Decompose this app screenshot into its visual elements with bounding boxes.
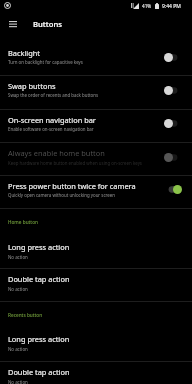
staticText: 9:44 PM xyxy=(162,3,181,10)
staticText: Always enable home button xyxy=(8,148,105,158)
button[interactable]: Switch off xyxy=(164,53,178,62)
staticText: Quickly open camera without unlocking yo… xyxy=(8,192,115,198)
staticText: On-screen navigation bar xyxy=(8,115,96,125)
button[interactable]: Switch off xyxy=(164,86,178,95)
button[interactable]: Switch off xyxy=(164,153,178,162)
staticText: Recents button xyxy=(8,312,43,318)
staticText: Keep hardware home button enabled when u… xyxy=(8,160,142,166)
button[interactable]: Open navigation menu xyxy=(0,16,26,34)
button[interactable] xyxy=(0,109,192,142)
button[interactable] xyxy=(0,38,192,74)
staticText: Swap the order of recents and back butto… xyxy=(8,92,99,98)
staticText: Backlight xyxy=(8,48,41,58)
button[interactable] xyxy=(0,361,192,384)
button[interactable] xyxy=(0,329,192,360)
staticText: Press power button twice for camera xyxy=(8,181,136,191)
button[interactable]: Switch off xyxy=(164,119,178,128)
button[interactable] xyxy=(0,236,192,267)
button[interactable] xyxy=(0,268,192,300)
staticText: Enable software on-screen navigation bar xyxy=(8,126,94,132)
staticText: No action xyxy=(8,286,28,292)
staticText: Double tap action xyxy=(8,367,70,377)
staticText: Turn on backlight for capacitive keys xyxy=(8,59,83,65)
button[interactable] xyxy=(0,75,192,111)
staticText: 41% xyxy=(142,3,152,9)
button[interactable]: Switch on xyxy=(168,185,182,194)
staticText: No action xyxy=(8,379,28,384)
staticText: Buttons xyxy=(33,19,62,29)
staticText: Home button xyxy=(8,219,38,225)
staticText: Swap buttons xyxy=(8,81,56,91)
staticText: Long press action xyxy=(8,334,70,344)
staticText: No action xyxy=(8,346,28,352)
button[interactable] xyxy=(0,175,192,207)
staticText: Double tap action xyxy=(8,274,70,284)
staticText: No action xyxy=(8,254,28,260)
staticText: Long press action xyxy=(8,242,70,252)
